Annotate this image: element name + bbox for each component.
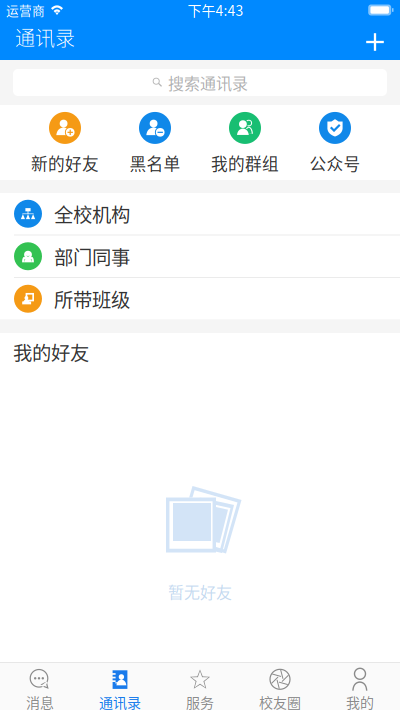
staticText: 校友圈 xyxy=(259,692,301,710)
staticText: 暂无好友 xyxy=(168,580,232,603)
staticText: 黑名单 xyxy=(129,151,180,175)
staticText: 搜索通讯录 xyxy=(168,71,248,94)
staticText: 我的群组 xyxy=(211,151,279,175)
button[interactable]: 消息 xyxy=(0,663,80,710)
button[interactable]: 校友圈 xyxy=(240,663,320,710)
button[interactable]: 通讯录 xyxy=(80,663,160,710)
button[interactable]: 公众号 xyxy=(290,105,380,180)
button[interactable]: 我的群组 xyxy=(200,105,290,180)
button[interactable]: 搜索通讯录 xyxy=(13,69,387,96)
staticText: 新的好友 xyxy=(31,151,99,175)
staticText: 运营商 xyxy=(6,1,45,19)
staticText: 全校机构 xyxy=(54,200,130,228)
button[interactable]: 我的 xyxy=(320,663,400,710)
staticText: 部门同事 xyxy=(54,242,130,270)
staticText: 通讯录 xyxy=(15,22,75,51)
staticText: 我的好友 xyxy=(13,338,89,366)
staticText: 消息 xyxy=(26,692,54,710)
button[interactable]: 黑名单 xyxy=(110,105,200,180)
staticText: 服务 xyxy=(186,692,214,710)
staticText: 公众号 xyxy=(309,151,360,175)
staticText: 下午4:43 xyxy=(188,0,244,20)
button[interactable]: 新的好友 xyxy=(20,105,110,180)
button[interactable]: 部门同事 xyxy=(0,235,400,277)
button[interactable]: 全校机构 xyxy=(0,193,400,234)
button[interactable]: 服务 xyxy=(160,663,240,710)
staticText: 我的 xyxy=(346,692,374,710)
staticText: 通讯录 xyxy=(99,692,141,710)
staticText: 所带班级 xyxy=(54,285,130,313)
button[interactable]: 所带班级 xyxy=(0,278,400,319)
button[interactable]: 添加 xyxy=(358,23,392,57)
